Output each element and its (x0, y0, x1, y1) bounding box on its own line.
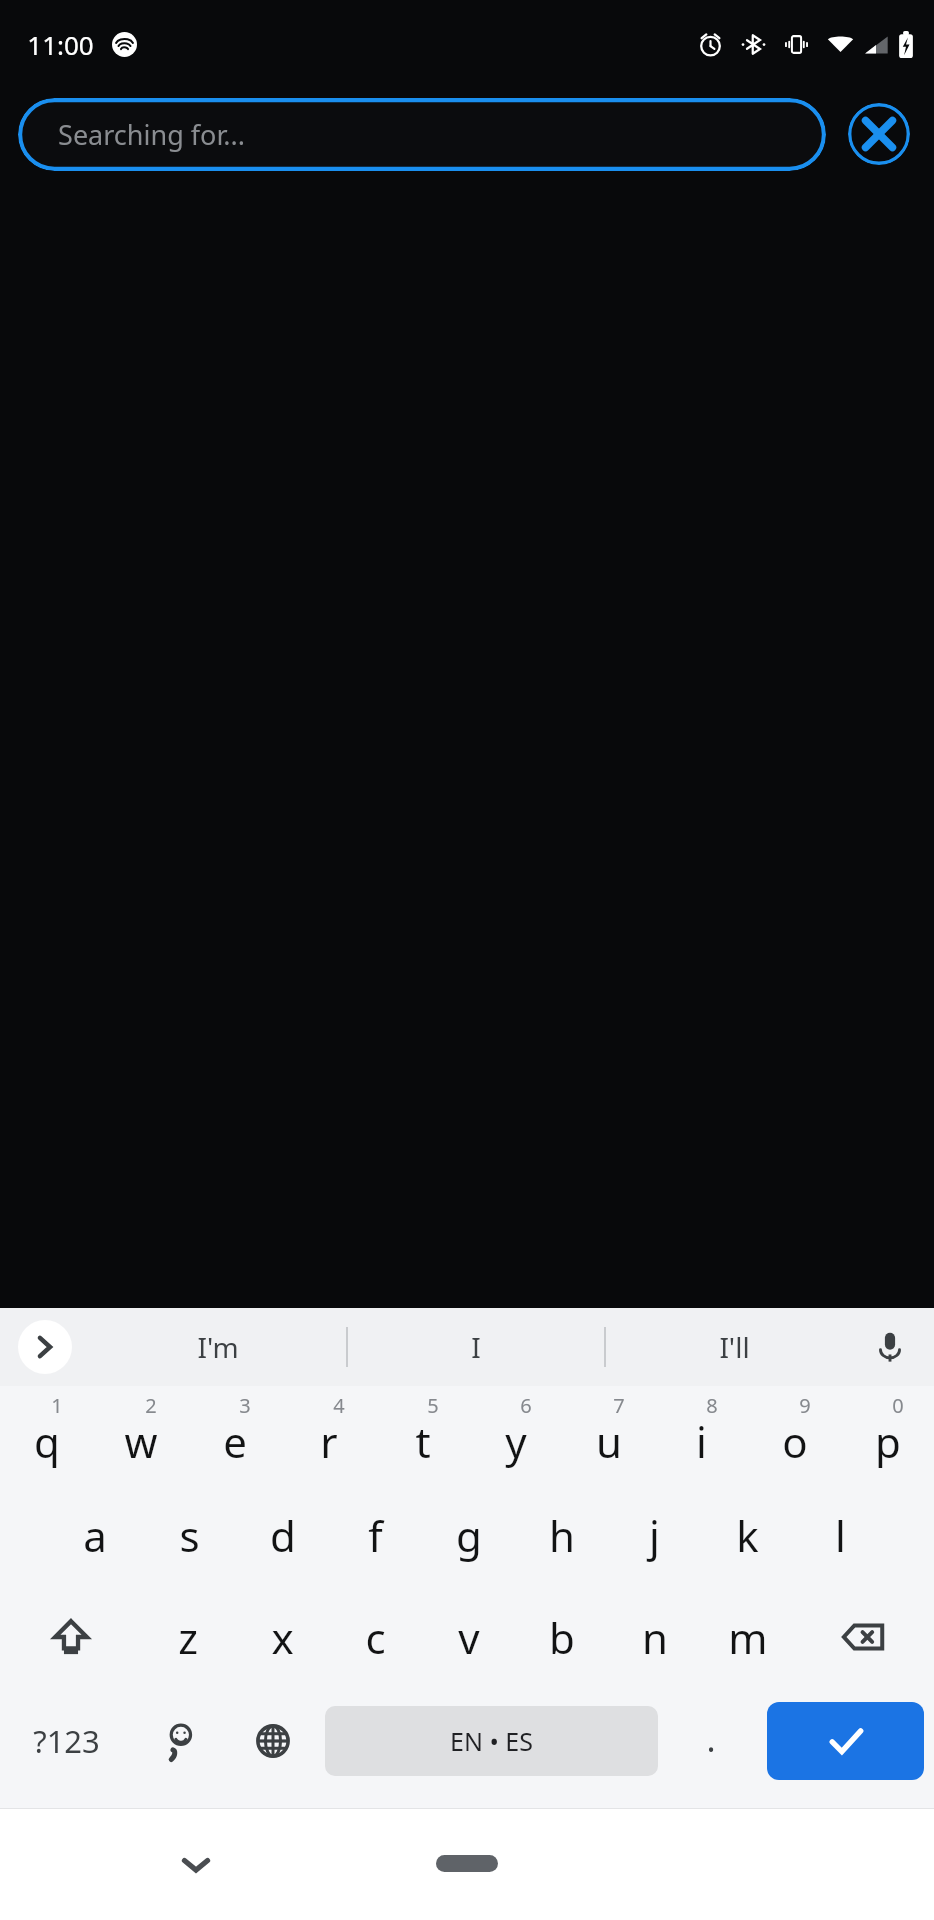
staticText: g (456, 1507, 482, 1564)
button[interactable]: Shift (0, 1586, 141, 1688)
button[interactable]: I'll (606, 1308, 862, 1386)
staticText: 5 (427, 1392, 439, 1419)
staticText: r (320, 1413, 338, 1470)
staticText: I'll (719, 1328, 750, 1366)
staticText: w (124, 1413, 158, 1470)
staticText: y (505, 1413, 527, 1470)
button[interactable]: Close search (848, 103, 910, 165)
button[interactable]: 8 (655, 1386, 748, 1484)
button[interactable]: 1 (0, 1386, 94, 1484)
button[interactable]: v (422, 1586, 515, 1688)
staticText: x (271, 1609, 294, 1666)
button[interactable]: s (142, 1484, 236, 1586)
button[interactable]: m (701, 1586, 794, 1688)
button[interactable]: Change language (226, 1688, 319, 1794)
staticText: ?123 (33, 1720, 100, 1762)
button[interactable]: Voice input (862, 1319, 918, 1375)
button[interactable]: I'm (90, 1308, 346, 1386)
staticText: z (178, 1609, 198, 1666)
staticText: 8 (706, 1392, 718, 1419)
button[interactable]: f (329, 1484, 422, 1586)
staticText: q (34, 1413, 60, 1470)
staticText: Searching for... (58, 116, 245, 153)
staticText: I'm (197, 1328, 239, 1366)
button[interactable]: Expand toolbar (18, 1320, 72, 1374)
staticText: t (415, 1413, 431, 1470)
staticText: 4 (333, 1392, 345, 1419)
button[interactable]: 0 (841, 1386, 934, 1484)
staticText: n (642, 1609, 668, 1666)
staticText: 0 (892, 1392, 904, 1419)
button[interactable]: x (235, 1586, 329, 1688)
staticText: c (365, 1609, 386, 1666)
staticText: 1 (51, 1392, 63, 1419)
staticText: 7 (613, 1392, 625, 1419)
staticText: u (596, 1413, 622, 1470)
staticText: v (458, 1609, 480, 1666)
staticText: I (471, 1328, 481, 1366)
button[interactable]: 7 (562, 1386, 655, 1484)
button[interactable]: l (794, 1484, 887, 1586)
staticText: s (179, 1507, 200, 1564)
button[interactable]: 3 (188, 1386, 282, 1484)
button[interactable]: g (422, 1484, 515, 1586)
staticText: h (549, 1507, 575, 1564)
button[interactable]: EN • ES (325, 1706, 658, 1776)
button[interactable]: Hide keyboard (168, 1836, 224, 1892)
button[interactable]: Emoji and comma (133, 1688, 226, 1794)
button[interactable]: z (141, 1586, 235, 1688)
staticText: 9 (799, 1392, 811, 1419)
button[interactable]: 6 (469, 1386, 562, 1484)
button[interactable]: Home (436, 1855, 498, 1872)
button[interactable]: ?123 (0, 1688, 133, 1794)
staticText: 6 (520, 1392, 532, 1419)
button[interactable]: h (515, 1484, 608, 1586)
staticText: b (549, 1609, 575, 1666)
staticText: k (736, 1507, 759, 1564)
staticText: i (696, 1413, 707, 1470)
staticText: m (728, 1609, 768, 1666)
button[interactable]: 2 (94, 1386, 188, 1484)
staticText: l (835, 1507, 846, 1564)
staticText: f (368, 1507, 383, 1564)
staticText: o (782, 1413, 808, 1470)
button[interactable]: Searching for... (18, 98, 826, 171)
staticText: 11:00 (27, 27, 94, 62)
staticText: 3 (239, 1392, 251, 1419)
button[interactable]: n (608, 1586, 701, 1688)
staticText: p (875, 1413, 901, 1470)
button[interactable]: b (515, 1586, 608, 1688)
button[interactable]: 9 (748, 1386, 841, 1484)
button[interactable]: k (701, 1484, 794, 1586)
button[interactable]: 4 (282, 1386, 376, 1484)
button[interactable]: a (48, 1484, 142, 1586)
button[interactable]: . (664, 1688, 757, 1794)
button[interactable]: Backspace (794, 1586, 934, 1688)
staticText: j (649, 1507, 660, 1564)
staticText: a (83, 1507, 107, 1564)
button[interactable]: d (236, 1484, 329, 1586)
button[interactable]: Search (767, 1702, 924, 1780)
staticText: EN • ES (450, 1724, 533, 1758)
button[interactable]: 5 (376, 1386, 469, 1484)
button[interactable]: c (329, 1586, 422, 1688)
staticText: . (706, 1716, 716, 1762)
staticText: d (270, 1507, 296, 1564)
button[interactable]: j (608, 1484, 701, 1586)
staticText: e (223, 1413, 247, 1470)
button[interactable]: I (348, 1308, 604, 1386)
staticText: 2 (145, 1392, 157, 1419)
